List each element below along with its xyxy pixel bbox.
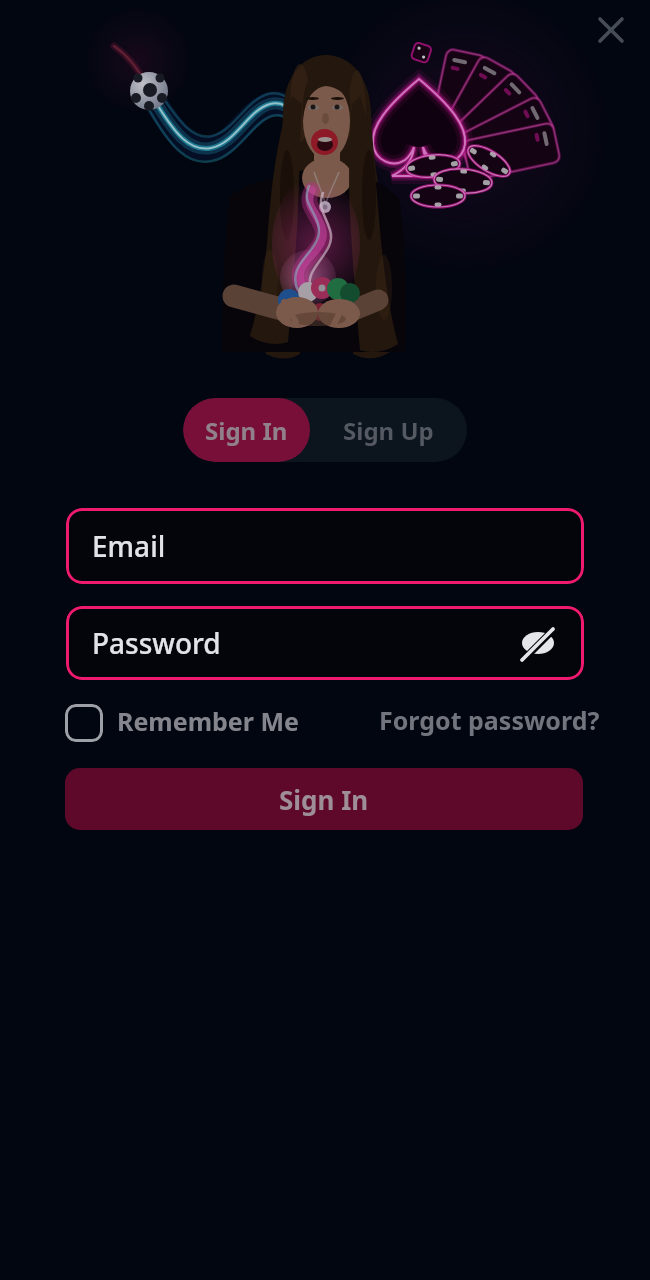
button[interactable]: Email	[66, 508, 584, 584]
staticText: Email	[92, 527, 166, 565]
staticText: Sign In	[279, 782, 369, 817]
button[interactable]	[65, 704, 103, 742]
button[interactable]: Sign In	[183, 398, 310, 462]
button[interactable]: Forgot password?	[379, 703, 600, 737]
staticText: Sign Up	[343, 414, 434, 447]
staticText: Password	[92, 624, 221, 662]
staticText: Sign In	[205, 414, 288, 447]
button[interactable]: Sign In	[65, 768, 583, 830]
button[interactable]: Password	[66, 606, 584, 680]
button[interactable]	[520, 625, 556, 661]
button[interactable]	[587, 6, 635, 54]
button[interactable]: Sign Up	[310, 398, 467, 462]
staticText: Remember Me	[117, 704, 299, 738]
